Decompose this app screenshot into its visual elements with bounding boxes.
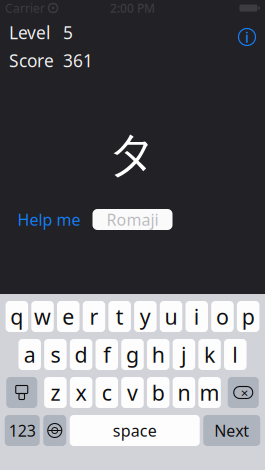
staticText: v: [127, 378, 138, 407]
button[interactable]: Help me: [13, 206, 84, 233]
button[interactable]: Next keyboard: [43, 415, 66, 446]
button[interactable]: e: [57, 301, 79, 332]
staticText: d: [75, 340, 88, 369]
button[interactable]: k: [198, 339, 221, 370]
button[interactable]: w: [31, 301, 54, 332]
staticText: f: [103, 340, 110, 369]
button[interactable]: h: [147, 339, 169, 370]
button[interactable]: s: [44, 339, 67, 370]
staticText: 5: [63, 21, 73, 44]
button[interactable]: m: [198, 377, 221, 408]
staticText: 361: [63, 49, 93, 72]
staticText: space: [113, 420, 157, 441]
staticText: y: [140, 302, 151, 331]
button[interactable]: v: [121, 377, 144, 408]
button[interactable]: i: [185, 301, 208, 332]
button[interactable]: c: [96, 377, 118, 408]
button[interactable]: a: [18, 339, 41, 370]
staticText: 2:00 PM: [110, 0, 155, 16]
button[interactable]: u: [160, 301, 182, 332]
button[interactable]: b: [147, 377, 169, 408]
staticText: w: [34, 302, 51, 331]
staticText: i: [194, 302, 200, 331]
staticText: q: [10, 302, 23, 331]
staticText: b: [152, 378, 165, 407]
button[interactable]: space: [70, 415, 200, 446]
staticText: Level: [9, 21, 50, 44]
button[interactable]: q: [6, 301, 28, 332]
button[interactable]: n: [173, 377, 195, 408]
button[interactable]: t: [108, 301, 131, 332]
staticText: e: [62, 302, 74, 331]
button[interactable]: y: [134, 301, 157, 332]
staticText: 123: [9, 420, 36, 441]
staticText: Help me: [17, 209, 80, 230]
button[interactable]: o: [211, 301, 234, 332]
staticText: i: [245, 27, 249, 47]
button[interactable]: Romaji: [92, 209, 172, 230]
button[interactable]: g: [121, 339, 144, 370]
staticText: タ: [108, 125, 157, 184]
staticText: u: [164, 302, 177, 331]
staticText: z: [50, 378, 60, 407]
staticText: l: [232, 340, 238, 369]
staticText: k: [204, 340, 215, 369]
staticText: Score: [9, 49, 54, 72]
staticText: Romaji: [106, 209, 158, 230]
staticText: x: [76, 378, 87, 407]
staticText: p: [242, 302, 255, 331]
staticText: c: [102, 378, 112, 407]
staticText: h: [152, 340, 165, 369]
button[interactable]: r: [83, 301, 105, 332]
staticText: t: [116, 302, 124, 331]
staticText: g: [126, 340, 139, 369]
staticText: o: [216, 302, 229, 331]
button[interactable]: l: [224, 339, 246, 370]
button[interactable]: 123: [5, 415, 40, 446]
button[interactable]: p: [237, 301, 259, 332]
staticText: ×: [241, 384, 249, 401]
staticText: r: [89, 302, 98, 331]
staticText: j: [181, 340, 187, 369]
staticText: n: [177, 378, 190, 407]
staticText: Next: [214, 420, 249, 441]
button[interactable]: z: [44, 377, 67, 408]
button[interactable]: x: [70, 377, 92, 408]
staticText: a: [24, 340, 36, 369]
button[interactable]: Info: [231, 21, 263, 53]
button[interactable]: j: [173, 339, 195, 370]
staticText: m: [200, 378, 220, 407]
button[interactable]: f: [95, 339, 118, 370]
button[interactable]: Delete: [228, 377, 259, 408]
button[interactable]: d: [70, 339, 92, 370]
staticText: Carrier: [5, 0, 45, 16]
button[interactable]: Next: [203, 415, 260, 446]
button[interactable]: Shift: [6, 377, 37, 408]
staticText: s: [50, 340, 60, 369]
